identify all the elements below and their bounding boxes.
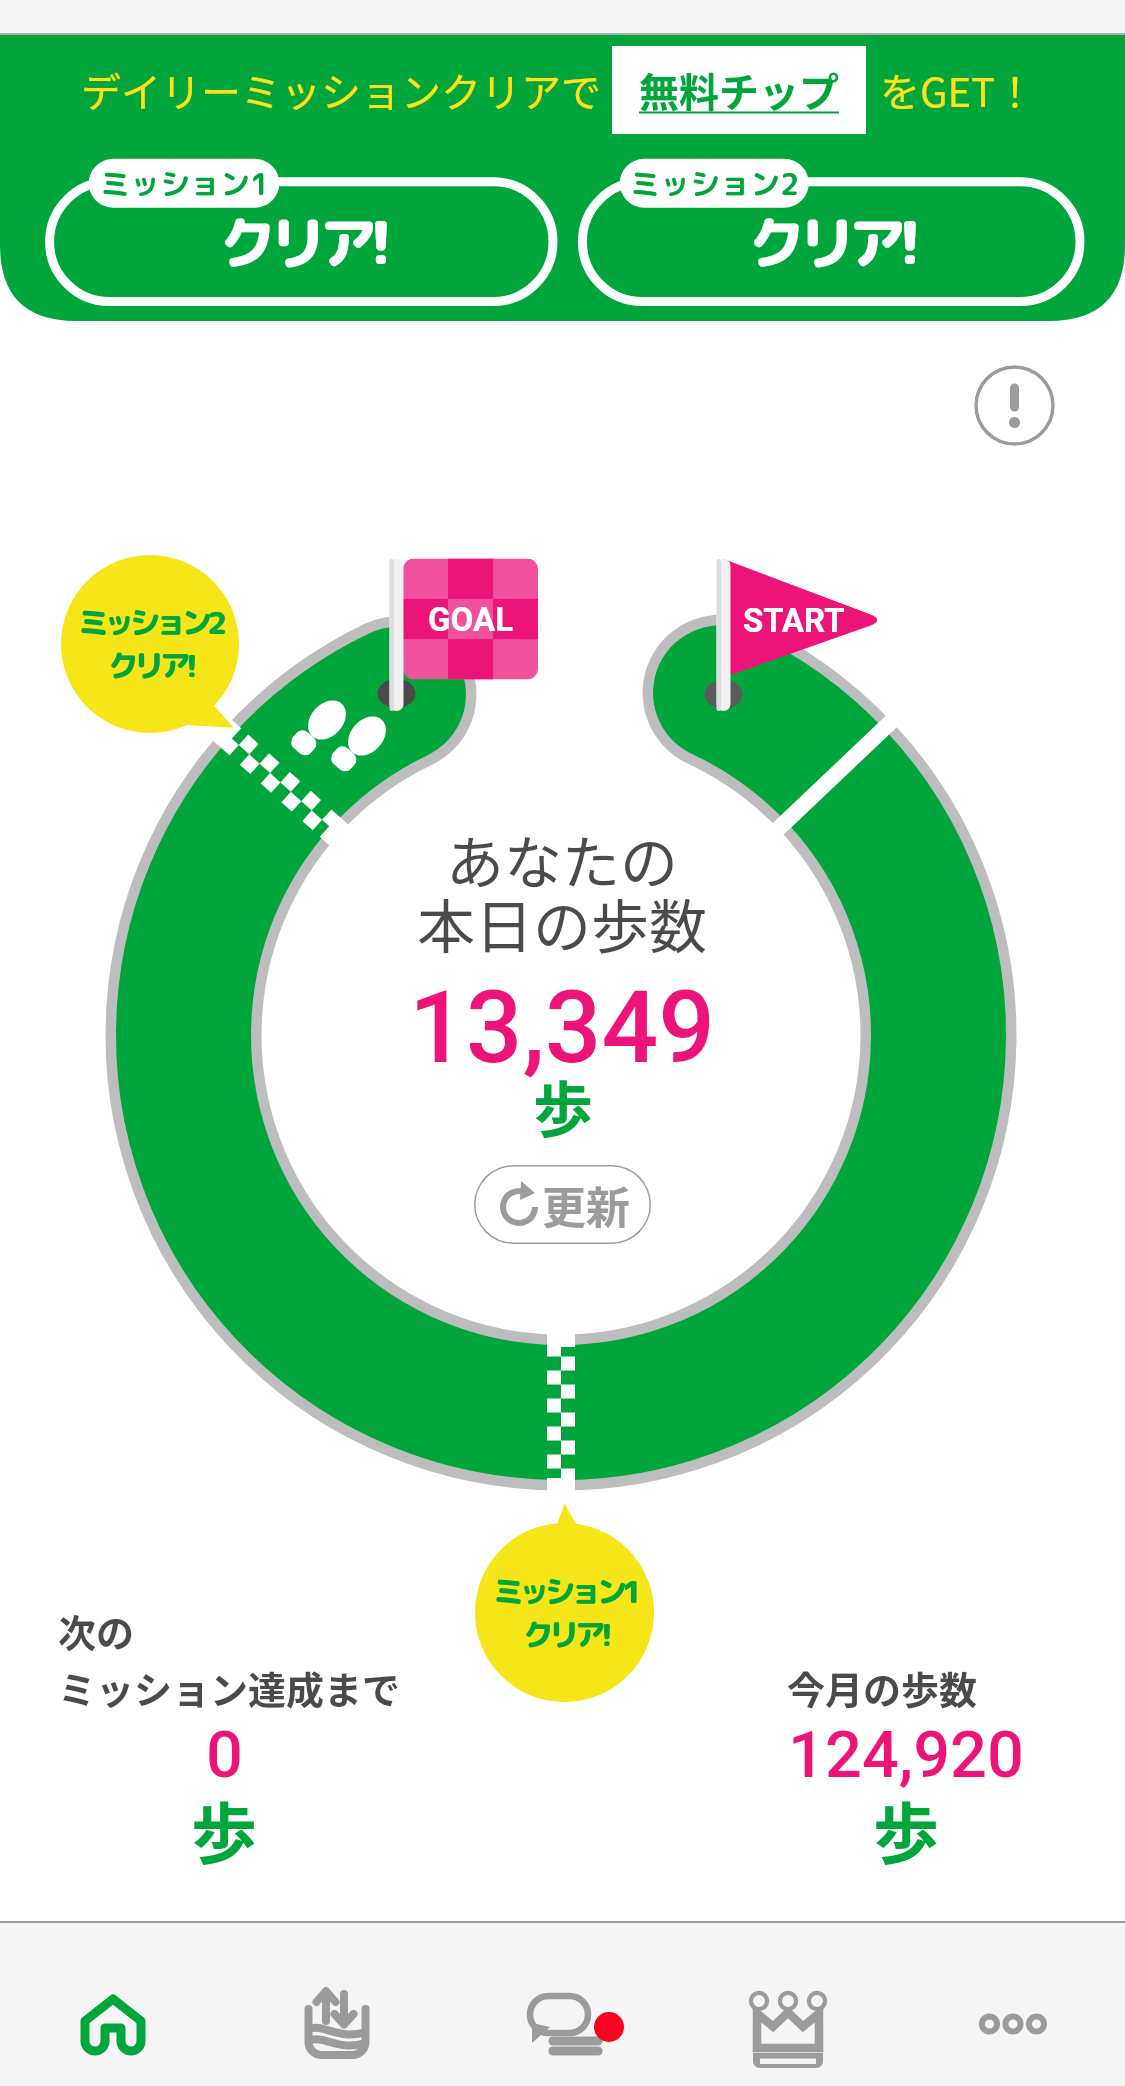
staticText: あなたの xyxy=(446,817,679,901)
button[interactable]: クリア! xyxy=(582,182,1080,302)
staticText: 今月の歩数 xyxy=(787,1660,978,1715)
button[interactable]: 更新 xyxy=(474,1165,651,1244)
staticText: クリア! xyxy=(108,644,193,687)
button[interactable]: Messages xyxy=(450,1923,675,2086)
staticText: クリア! xyxy=(523,1613,608,1656)
staticText: 次の xyxy=(58,1603,135,1658)
staticText: デイリーミッションクリアで xyxy=(81,61,601,119)
staticText: ミッション1 xyxy=(100,163,270,205)
button[interactable]: 無料チップ xyxy=(639,46,839,134)
button[interactable]: More xyxy=(900,1923,1125,2086)
staticText: 無料チップ xyxy=(639,61,839,119)
button[interactable]: Steps xyxy=(225,1923,450,2086)
staticText: ミッション1 xyxy=(493,1570,637,1613)
staticText: 124,920 xyxy=(788,1717,1024,1793)
staticText: 0 xyxy=(206,1717,243,1793)
staticText: をGET！ xyxy=(880,61,1036,119)
staticText: ミッション2 xyxy=(78,601,222,644)
button[interactable]: Ranking xyxy=(675,1923,900,2086)
staticText: クリア! xyxy=(748,202,914,283)
staticText: START xyxy=(743,601,845,640)
button[interactable]: Home xyxy=(0,1923,225,2086)
staticText: 更新 xyxy=(542,1173,630,1237)
staticText: 歩 xyxy=(533,1062,593,1149)
staticText: クリア! xyxy=(219,202,385,283)
staticText: ミッション達成まで xyxy=(58,1660,401,1715)
staticText: 本日の歩数 xyxy=(417,881,708,965)
button[interactable]: Information xyxy=(974,365,1055,446)
staticText: 13,349 xyxy=(409,969,716,1086)
staticText: GOAL xyxy=(428,600,514,639)
staticText: 歩 xyxy=(873,1781,939,1871)
staticText: 歩 xyxy=(191,1781,257,1871)
button[interactable]: クリア! xyxy=(50,182,553,302)
staticText: ミッション2 xyxy=(630,163,800,205)
